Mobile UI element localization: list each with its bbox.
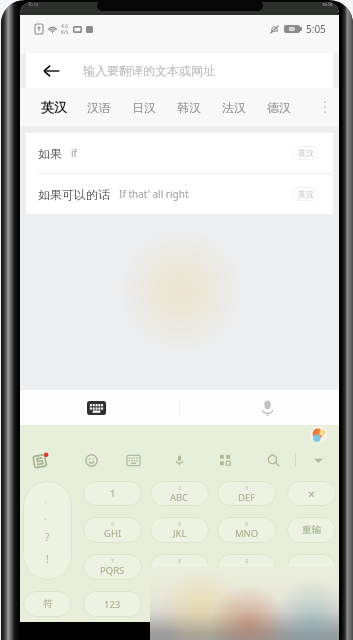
button[interactable]: 韩汉 <box>166 88 211 126</box>
staticText: 如果可以的话 <box>38 187 110 202</box>
staticText: 3 <box>245 484 249 491</box>
button[interactable]: Back <box>26 53 333 88</box>
staticText: 日汉 <box>132 100 156 115</box>
staticText: 7 <box>111 557 115 564</box>
staticText: 1 <box>110 487 116 500</box>
staticText: 123 <box>104 598 121 611</box>
staticText: 4 <box>111 520 115 527</box>
staticText: 10:10 <box>28 2 39 7</box>
staticText: 9 <box>245 557 249 564</box>
staticText: 6 <box>245 520 249 527</box>
button[interactable]: 日汉 <box>121 88 166 126</box>
button[interactable]: 、 <box>23 481 72 580</box>
staticText: 4.0 <box>61 23 69 30</box>
button[interactable]: × <box>287 481 336 506</box>
staticText: 89 <box>289 26 295 33</box>
staticText: 2 <box>178 484 182 491</box>
staticText: 汉语 <box>87 100 111 115</box>
staticText: 法汉 <box>222 100 246 115</box>
staticText: K/s <box>61 29 69 36</box>
staticText: TUV <box>171 564 189 577</box>
button[interactable] <box>287 591 336 617</box>
staticText: if <box>71 146 78 160</box>
button[interactable]: 符 <box>23 591 72 617</box>
button[interactable]: 2 <box>150 481 209 506</box>
staticText: 、 <box>242 598 252 610</box>
button[interactable]: Collapse keyboard <box>306 448 330 472</box>
button[interactable]: 重输 <box>287 517 336 543</box>
button[interactable]: 如果可以的话 <box>26 174 333 214</box>
button[interactable]: 如果 <box>26 133 333 173</box>
staticText: 重输 <box>302 524 321 536</box>
button[interactable]: 0 <box>150 591 209 617</box>
button[interactable]: 、 <box>217 591 276 617</box>
button[interactable]: 英汉 <box>31 88 76 126</box>
button[interactable]: 德汉 <box>256 88 301 126</box>
button[interactable]: Voice input <box>167 448 191 472</box>
staticText: 输入要翻译的文本或网址 <box>83 63 215 78</box>
staticText: JKL <box>173 527 187 540</box>
button[interactable]: More options <box>310 88 339 126</box>
button[interactable]: Keyboard input <box>80 392 112 424</box>
staticText: 10:10 <box>322 2 333 7</box>
staticText: 8 <box>178 557 182 564</box>
staticText: 、 <box>44 495 51 504</box>
button[interactable]: 1 <box>83 481 142 506</box>
staticText: 德汉 <box>267 100 291 115</box>
staticText: MNO <box>235 527 259 540</box>
button[interactable]: 3 <box>217 481 276 506</box>
staticText: 韩汉 <box>177 100 201 115</box>
button[interactable]: 5 <box>150 517 209 543</box>
button[interactable]: Apps <box>213 448 237 472</box>
staticText: ? <box>45 530 50 544</box>
button[interactable]: 123 <box>83 591 142 617</box>
button[interactable]: Search <box>261 448 285 472</box>
staticText: ! <box>46 552 49 566</box>
staticText: If that' all right <box>119 187 189 201</box>
button[interactable]: Emoji <box>79 448 103 472</box>
button[interactable]: 法汉 <box>211 88 256 126</box>
button[interactable]: Voice input <box>251 392 283 424</box>
staticText: 5 <box>178 520 182 527</box>
staticText: 如果 <box>38 146 62 161</box>
staticText: ABC <box>170 491 189 504</box>
staticText: 英汉 <box>298 189 314 199</box>
button[interactable]: 8 <box>150 554 209 580</box>
staticText: 0 <box>177 598 183 611</box>
staticText: 。 <box>44 512 51 521</box>
button[interactable]: Sogou input <box>28 448 52 472</box>
staticText: × <box>308 486 315 502</box>
button[interactable]: 6 <box>217 517 276 543</box>
staticText: 符 <box>43 598 53 610</box>
button[interactable]: Keyboard layout <box>121 448 145 472</box>
staticText: 英汉 <box>298 148 314 158</box>
staticText: 英汉 <box>41 99 67 115</box>
button[interactable]: 7 <box>83 554 142 580</box>
staticText: 5:05 <box>306 22 326 36</box>
staticText: DEF <box>238 491 256 504</box>
button[interactable]: Back <box>34 53 69 88</box>
button[interactable] <box>287 554 336 580</box>
staticText: PQRS <box>100 564 125 577</box>
button[interactable]: 4 <box>83 517 142 543</box>
staticText: GHI <box>104 527 122 540</box>
button[interactable]: 9 <box>217 554 276 580</box>
button[interactable]: 汉语 <box>76 88 121 126</box>
